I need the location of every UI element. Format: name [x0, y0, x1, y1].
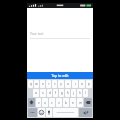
- button[interactable]: e: [40, 80, 45, 88]
- button[interactable]: p: [86, 80, 92, 88]
- button[interactable]: t: [52, 80, 57, 88]
- button[interactable]: r: [46, 80, 51, 88]
- button[interactable]: c: [49, 98, 55, 107]
- staticText: v: [58, 101, 60, 105]
- staticText: i: [75, 82, 76, 86]
- staticText: Your text: [30, 32, 44, 36]
- staticText: k: [79, 91, 81, 95]
- button[interactable]: y: [58, 80, 64, 88]
- staticText: c: [51, 101, 53, 105]
- button[interactable]: Backspace: [84, 98, 92, 107]
- button[interactable]: Your text: [27, 32, 93, 41]
- staticText: a: [35, 91, 37, 95]
- button[interactable]: Space: [53, 108, 78, 117]
- staticText: r: [48, 82, 50, 86]
- staticText: o: [81, 82, 83, 86]
- staticText: Tap to edit: [51, 73, 69, 78]
- staticText: n: [72, 101, 74, 105]
- button[interactable]: z: [36, 98, 41, 107]
- button[interactable]: m: [77, 98, 83, 107]
- button[interactable]: j: [71, 89, 76, 97]
- button[interactable]: Emoji: [38, 108, 45, 117]
- button[interactable]: b: [63, 98, 69, 107]
- staticText: s: [42, 91, 44, 95]
- button[interactable]: d: [47, 89, 52, 97]
- staticText: u: [67, 82, 69, 86]
- staticText: z: [38, 101, 40, 105]
- staticText: l: [85, 91, 86, 95]
- button[interactable]: i: [72, 80, 78, 88]
- staticText: j: [73, 91, 74, 95]
- staticText: b: [65, 101, 67, 105]
- button[interactable]: q: [28, 80, 33, 88]
- button[interactable]: Symbols: [28, 108, 37, 117]
- button[interactable]: l: [83, 89, 88, 97]
- button[interactable]: g: [59, 89, 64, 97]
- button[interactable]: w: [34, 80, 39, 88]
- staticText: g: [61, 91, 63, 95]
- button[interactable]: Shift: [28, 98, 35, 107]
- staticText: e: [42, 82, 44, 86]
- button[interactable]: h: [65, 89, 70, 97]
- staticText: f: [55, 91, 56, 95]
- staticText: y: [60, 82, 62, 86]
- button[interactable]: u: [65, 80, 71, 88]
- staticText: p: [88, 82, 90, 86]
- staticText: w: [35, 82, 38, 86]
- button[interactable]: Enter: [79, 108, 92, 117]
- button[interactable]: Voice input: [46, 108, 52, 117]
- staticText: m: [79, 101, 82, 105]
- button[interactable]: k: [77, 89, 82, 97]
- staticText: t: [54, 82, 56, 86]
- staticText: x: [44, 101, 46, 105]
- button[interactable]: f: [53, 89, 58, 97]
- button[interactable]: a: [33, 89, 39, 97]
- staticText: q: [30, 82, 32, 86]
- staticText: h: [67, 91, 69, 95]
- staticText: d: [49, 91, 51, 95]
- button[interactable]: o: [79, 80, 85, 88]
- button[interactable]: n: [70, 98, 76, 107]
- button[interactable]: x: [42, 98, 48, 107]
- button[interactable]: Tap to edit: [27, 72, 93, 79]
- button[interactable]: s: [40, 89, 46, 97]
- button[interactable]: v: [56, 98, 62, 107]
